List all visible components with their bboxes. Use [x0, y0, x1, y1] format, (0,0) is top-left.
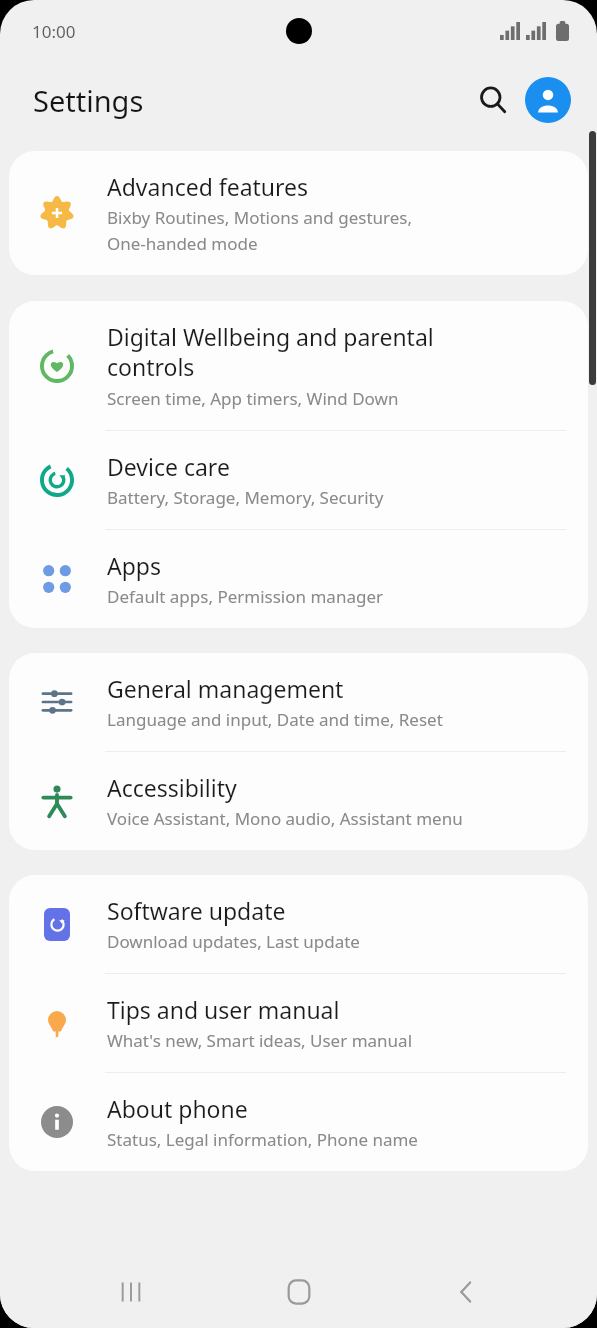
staticText: Accessibility	[107, 772, 237, 803]
staticText: Language and input, Date and time, Reset	[107, 708, 443, 731]
staticText: Default apps, Permission manager	[107, 585, 383, 608]
staticText: Bixby Routines, Motions and gestures, On…	[107, 206, 413, 255]
button[interactable]: General management	[9, 653, 588, 751]
staticText: Advanced features	[107, 171, 309, 202]
staticText: About phone	[107, 1093, 248, 1124]
button[interactable]: Accessibility	[9, 752, 588, 850]
button[interactable]: Home	[262, 1255, 336, 1328]
staticText: Settings	[33, 81, 144, 120]
button[interactable]: Account	[525, 77, 571, 123]
button[interactable]: About phone	[9, 1073, 588, 1171]
button[interactable]: Device care	[9, 431, 588, 529]
button[interactable]: Tips and user manual	[9, 974, 588, 1072]
button[interactable]: Recent apps	[94, 1255, 168, 1328]
staticText: Voice Assistant, Mono audio, Assistant m…	[107, 807, 463, 830]
staticText: Digital Wellbeing and parental controls	[107, 321, 434, 383]
staticText: Status, Legal information, Phone name	[107, 1128, 418, 1151]
button[interactable]: Back	[429, 1255, 503, 1328]
button[interactable]: Software update	[9, 875, 588, 973]
staticText: Tips and user manual	[107, 994, 340, 1025]
staticText: Battery, Storage, Memory, Security	[107, 486, 384, 509]
staticText: Apps	[107, 550, 162, 581]
button[interactable]: Apps	[9, 530, 588, 628]
staticText: Device care	[107, 451, 230, 482]
staticText: Download updates, Last update	[107, 930, 360, 953]
staticText: 10:00	[32, 20, 76, 43]
button[interactable]: Search	[469, 76, 517, 124]
staticText: Screen time, App timers, Wind Down	[107, 387, 399, 410]
staticText: Software update	[107, 895, 286, 926]
staticText: What's new, Smart ideas, User manual	[107, 1029, 413, 1052]
button[interactable]: Advanced features	[9, 151, 588, 275]
staticText: General management	[107, 673, 344, 704]
button[interactable]: Digital Wellbeing and parental controls	[9, 301, 588, 430]
